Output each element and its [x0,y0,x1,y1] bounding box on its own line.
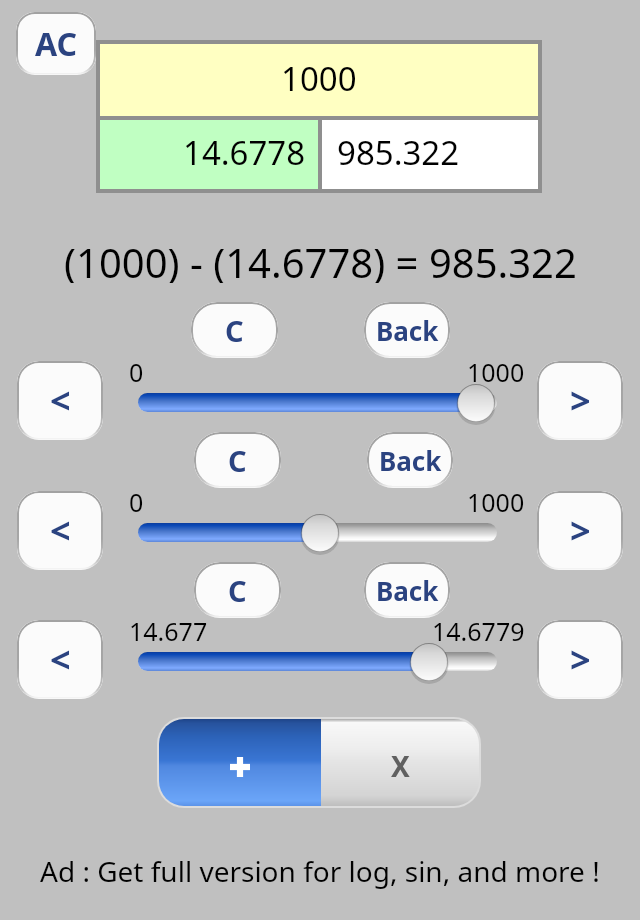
staticText: < [50,635,71,684]
staticText: 1000 [467,485,525,517]
button[interactable]: Slider thumb [455,382,497,424]
staticText: (1000) - (14.6778) = 985.322 [64,235,577,283]
button[interactable]: Decrease [17,361,103,440]
button[interactable]: Decrease [17,620,103,699]
button[interactable]: C [194,432,281,488]
staticText: AC [35,22,78,66]
staticText: > [570,376,591,425]
staticText: 1000 [467,355,525,387]
staticText: 985.322 [337,130,460,175]
staticText: Back [379,443,442,478]
staticText: Ad : Get full version for log, sin, and … [40,852,600,890]
button[interactable]: 1000 [100,44,538,116]
staticText: C [228,441,247,480]
staticText: C [225,311,244,350]
staticText: < [50,376,71,425]
staticText: 14.6778 [183,130,306,175]
button[interactable]: Slider thumb [299,512,341,554]
button[interactable]: Slider thumb [408,641,450,683]
button[interactable]: 985.322 [322,120,538,189]
staticText: 0 [129,355,144,387]
button[interactable]: Back [364,562,450,618]
staticText: 14.677 [129,614,208,646]
button[interactable]: Decrease [17,491,103,570]
staticText: Back [376,573,439,608]
staticText: 0 [129,485,144,517]
staticText: C [228,571,247,610]
button[interactable]: C [194,562,281,618]
staticText: Back [376,313,439,348]
button[interactable]: All clear [16,12,96,75]
staticText: < [50,506,71,555]
staticText: > [570,635,591,684]
button[interactable]: Add [159,719,321,806]
staticText: > [570,506,591,555]
staticText: X [391,747,410,785]
other: Add [230,757,250,777]
button[interactable]: Back [364,302,450,358]
button[interactable]: Back [367,432,453,488]
button[interactable]: X [321,719,479,806]
button[interactable]: Increase [537,491,623,570]
button[interactable]: Increase [537,361,623,440]
button[interactable]: Increase [537,620,623,699]
button[interactable]: 14.6778 [100,120,318,189]
staticText: 14.6779 [432,614,525,646]
button[interactable]: C [191,302,278,358]
staticText: 1000 [281,56,357,101]
